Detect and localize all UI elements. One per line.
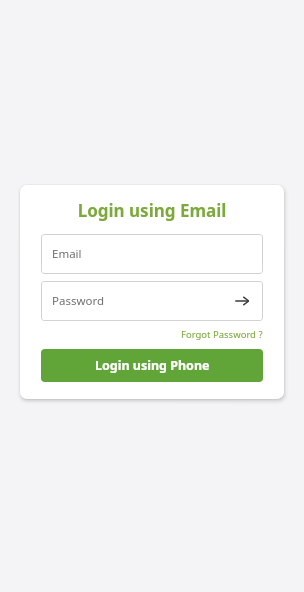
button[interactable]: Login using Phone — [41, 349, 263, 382]
staticText: Login using Phone — [95, 357, 210, 374]
button[interactable]: Password — [41, 281, 263, 321]
button[interactable]: Email — [41, 234, 263, 274]
staticText: Password — [52, 293, 232, 309]
button[interactable]: Submit — [232, 291, 252, 311]
staticText: Email — [52, 246, 252, 262]
staticText: Login using Email — [41, 199, 263, 222]
staticText: Forgot Password ? — [181, 328, 263, 341]
button[interactable]: Forgot Password ? — [181, 328, 263, 341]
